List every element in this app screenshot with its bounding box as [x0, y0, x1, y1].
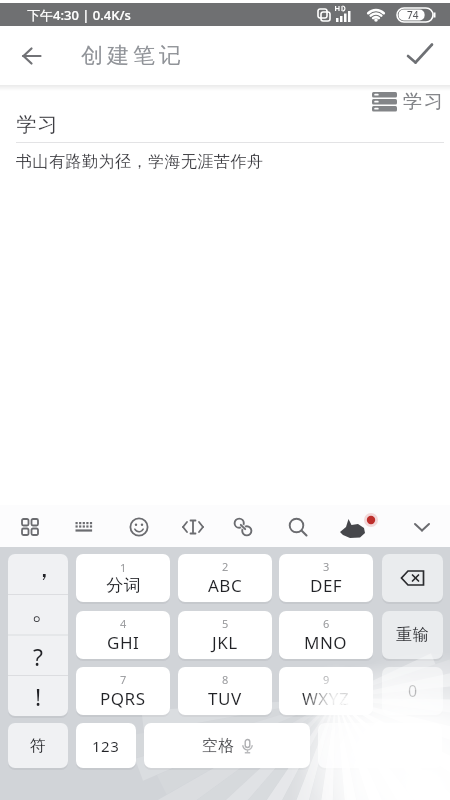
button[interactable]: 空格	[144, 723, 310, 768]
staticText: ABC	[208, 574, 243, 597]
button[interactable]: 123	[76, 723, 136, 768]
staticText: 1	[120, 560, 127, 575]
staticText: 。	[31, 594, 57, 627]
staticText: 4	[120, 616, 127, 631]
button[interactable]	[404, 509, 440, 545]
staticText: 符	[30, 736, 47, 756]
staticText: !	[35, 681, 42, 712]
button[interactable]: 3	[279, 554, 373, 602]
staticText: 重输	[396, 625, 429, 645]
staticText: DEF	[310, 574, 343, 597]
button[interactable]	[225, 509, 261, 545]
staticText: 9	[323, 672, 330, 687]
staticText: ，	[31, 554, 57, 585]
staticText: WXYZ	[302, 687, 350, 710]
staticText: 空格	[201, 736, 235, 756]
staticText: 2	[222, 559, 229, 574]
staticText: 创建笔记	[79, 42, 183, 70]
button[interactable]: 5	[178, 611, 272, 659]
button[interactable]: 学习	[0, 90, 444, 114]
staticText: PQRS	[100, 687, 146, 710]
staticText: ?	[33, 641, 43, 672]
button[interactable]	[398, 34, 442, 78]
staticText: MNO	[304, 631, 348, 654]
staticText: TUV	[208, 687, 242, 710]
staticText: 6	[323, 616, 330, 631]
staticText: 8	[222, 672, 229, 687]
button[interactable]: 重输	[382, 611, 443, 659]
staticText: 0	[408, 680, 418, 702]
staticText: 学习	[16, 112, 58, 137]
staticText: 3	[323, 559, 330, 574]
button[interactable]: 。	[8, 595, 68, 636]
button[interactable]: !	[8, 677, 68, 716]
button[interactable]: 符	[8, 723, 68, 768]
button[interactable]	[175, 509, 211, 545]
staticText: 5	[222, 616, 229, 631]
button[interactable]: ?	[8, 636, 68, 677]
button[interactable]	[121, 509, 157, 545]
staticText: 学习	[402, 90, 444, 114]
button[interactable]: 2	[178, 554, 272, 602]
staticText: GHI	[107, 631, 140, 654]
button[interactable]	[334, 509, 370, 545]
staticText: 分词	[106, 575, 141, 596]
button[interactable]: 7	[76, 667, 170, 715]
staticText: 下午4:30 | 0.4K/s	[27, 6, 131, 24]
staticText: 书山有路勤为径，学海无涯苦作舟	[16, 152, 264, 172]
button[interactable]: ，	[8, 554, 68, 595]
button[interactable]	[382, 554, 443, 602]
button[interactable]	[12, 36, 52, 76]
button[interactable]	[66, 509, 102, 545]
button[interactable]: 6	[279, 611, 373, 659]
button[interactable]	[12, 509, 48, 545]
button[interactable]: 1	[76, 554, 170, 602]
button[interactable]: 8	[178, 667, 272, 715]
button[interactable]: 0	[382, 667, 443, 715]
staticText: 7	[120, 672, 127, 687]
button[interactable]: 4	[76, 611, 170, 659]
button[interactable]: 9	[279, 667, 373, 715]
button[interactable]	[280, 509, 316, 545]
staticText: 74	[407, 8, 419, 22]
staticText: 123	[92, 736, 120, 756]
staticText: JKL	[212, 631, 238, 654]
